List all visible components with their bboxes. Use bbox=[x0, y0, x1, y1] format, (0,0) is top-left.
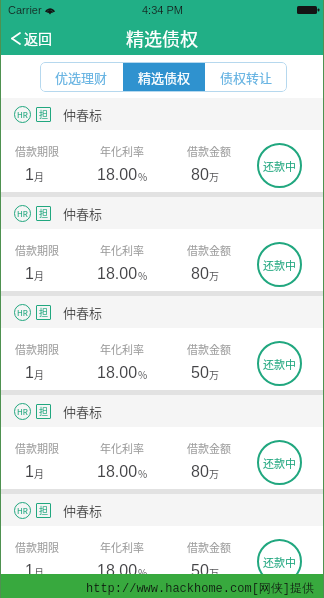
staticText: 月 bbox=[34, 169, 44, 183]
staticText: http://www.hackhome.com[网侠]提供 bbox=[86, 580, 315, 595]
staticText: 50 bbox=[191, 364, 209, 382]
staticText: 仲春标 bbox=[63, 303, 103, 322]
staticText: HR bbox=[17, 406, 28, 418]
staticText: % bbox=[138, 268, 148, 282]
staticText: 借款金额 bbox=[187, 242, 231, 258]
staticText: 借款金额 bbox=[187, 143, 231, 159]
staticText: % bbox=[138, 367, 148, 381]
staticText: 精选债权 bbox=[126, 25, 198, 51]
staticText: 18.00 bbox=[97, 562, 138, 580]
staticText: HR bbox=[17, 307, 28, 319]
button[interactable]: 优选理财 bbox=[40, 62, 123, 92]
staticText: 仲春标 bbox=[63, 204, 103, 223]
staticText: HR bbox=[17, 109, 28, 121]
button[interactable]: HR bbox=[1, 395, 323, 489]
staticText: HR bbox=[17, 208, 28, 220]
staticText: 1 bbox=[25, 166, 34, 184]
staticText: 返回 bbox=[24, 28, 52, 48]
staticText: 万 bbox=[209, 466, 219, 480]
staticText: 1 bbox=[25, 463, 34, 481]
button[interactable]: HR bbox=[1, 296, 323, 390]
staticText: 借款金额 bbox=[187, 440, 231, 456]
staticText: 50 bbox=[191, 562, 209, 580]
staticText: 年化利率 bbox=[100, 341, 144, 357]
staticText: 万 bbox=[209, 367, 219, 381]
staticText: 80 bbox=[191, 463, 209, 481]
button[interactable]: 还款中 bbox=[257, 341, 302, 386]
button[interactable]: 还款中 bbox=[257, 242, 302, 287]
staticText: 仲春标 bbox=[63, 105, 103, 124]
staticText: 担 bbox=[39, 405, 49, 418]
staticText: 担 bbox=[39, 207, 49, 220]
staticText: 借款金额 bbox=[187, 341, 231, 357]
staticText: 18.00 bbox=[97, 265, 138, 283]
staticText: 年化利率 bbox=[100, 440, 144, 456]
staticText: 4:34 PM bbox=[142, 4, 183, 16]
button[interactable]: 还款中 bbox=[257, 539, 302, 584]
staticText: 还款中 bbox=[263, 554, 296, 570]
staticText: HR bbox=[17, 505, 28, 517]
button[interactable]: HR bbox=[1, 98, 323, 192]
staticText: 优选理财 bbox=[55, 68, 108, 87]
staticText: 万 bbox=[209, 268, 219, 282]
button[interactable]: 返回 bbox=[1, 24, 60, 52]
staticText: 年化利率 bbox=[100, 539, 144, 555]
staticText: 80 bbox=[191, 265, 209, 283]
staticText: 1 bbox=[25, 265, 34, 283]
staticText: 1 bbox=[25, 364, 34, 382]
staticText: 借款金额 bbox=[187, 539, 231, 555]
staticText: 月 bbox=[34, 268, 44, 282]
staticText: 债权转让 bbox=[220, 68, 273, 87]
staticText: 仲春标 bbox=[63, 402, 103, 421]
button[interactable]: 还款中 bbox=[257, 143, 302, 188]
button[interactable]: 精选债权 bbox=[123, 62, 205, 92]
staticText: 借款期限 bbox=[15, 440, 59, 456]
staticText: 担 bbox=[39, 504, 49, 517]
staticText: 年化利率 bbox=[100, 143, 144, 159]
staticText: 借款期限 bbox=[15, 242, 59, 258]
button[interactable]: 债权转让 bbox=[205, 62, 287, 92]
staticText: 月 bbox=[34, 367, 44, 381]
staticText: 18.00 bbox=[97, 463, 138, 481]
staticText: 仲春标 bbox=[63, 501, 103, 520]
staticText: 年化利率 bbox=[100, 242, 144, 258]
staticText: 还款中 bbox=[263, 455, 296, 471]
staticText: Carrier bbox=[8, 4, 42, 16]
staticText: 18.00 bbox=[97, 364, 138, 382]
staticText: 1 bbox=[25, 562, 34, 580]
staticText: 担 bbox=[39, 306, 49, 319]
button[interactable]: HR bbox=[1, 197, 323, 291]
staticText: 借款期限 bbox=[15, 341, 59, 357]
staticText: 月 bbox=[34, 466, 44, 480]
staticText: 精选债权 bbox=[138, 68, 191, 87]
button[interactable]: 还款中 bbox=[257, 440, 302, 485]
staticText: % bbox=[138, 565, 148, 579]
staticText: 还款中 bbox=[263, 257, 296, 273]
button[interactable]: HR bbox=[1, 494, 323, 574]
staticText: 万 bbox=[209, 565, 219, 579]
staticText: 担 bbox=[39, 108, 49, 121]
staticText: % bbox=[138, 466, 148, 480]
staticText: 18.00 bbox=[97, 166, 138, 184]
staticText: 80 bbox=[191, 166, 209, 184]
staticText: 借款期限 bbox=[15, 143, 59, 159]
staticText: 还款中 bbox=[263, 356, 296, 372]
staticText: % bbox=[138, 169, 148, 183]
staticText: 万 bbox=[209, 169, 219, 183]
staticText: 月 bbox=[34, 565, 44, 579]
staticText: 借款期限 bbox=[15, 539, 59, 555]
staticText: 还款中 bbox=[263, 158, 296, 174]
